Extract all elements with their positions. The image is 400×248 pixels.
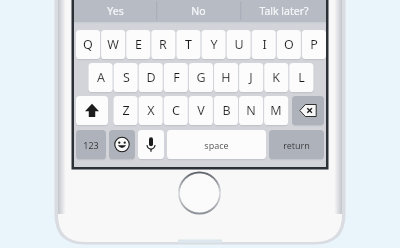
button[interactable]: S (114, 63, 138, 92)
staticText: F (173, 69, 180, 86)
button[interactable]: Shift (76, 96, 108, 125)
staticText: U (234, 36, 244, 53)
button[interactable]: A (89, 63, 113, 92)
staticText: V (197, 102, 205, 119)
button[interactable]: N (239, 96, 263, 125)
staticText: return (283, 139, 310, 151)
button[interactable]: R (151, 30, 175, 59)
staticText: E (135, 36, 142, 53)
button[interactable]: Y (202, 30, 226, 59)
button[interactable]: J (239, 63, 263, 92)
staticText: space (204, 139, 229, 151)
button[interactable]: Home (178, 172, 221, 214)
button[interactable]: B (214, 96, 238, 125)
button[interactable]: P (302, 30, 326, 59)
staticText: S (123, 69, 130, 86)
button[interactable]: Emoji (109, 130, 135, 159)
button[interactable]: U (227, 30, 251, 59)
button[interactable]: Q (76, 30, 100, 59)
staticText: D (146, 69, 156, 86)
staticText: No (191, 4, 206, 18)
button[interactable]: E (126, 30, 150, 59)
button[interactable]: X (139, 96, 163, 125)
staticText: K (272, 69, 280, 86)
button[interactable]: Z (114, 96, 138, 125)
staticText: R (159, 36, 167, 53)
staticText: O (284, 36, 294, 53)
staticText: B (222, 102, 231, 119)
staticText: T (185, 36, 192, 53)
staticText: X (147, 102, 155, 119)
staticText: A (97, 69, 105, 86)
button[interactable]: W (101, 30, 125, 59)
staticText: Y (210, 36, 218, 53)
button[interactable]: M (264, 96, 288, 125)
button[interactable]: F (164, 63, 188, 92)
button[interactable]: G (189, 63, 213, 92)
button[interactable]: Dictate (138, 130, 164, 159)
button[interactable]: K (264, 63, 288, 92)
button[interactable]: D (139, 63, 163, 92)
staticText: Yes (107, 4, 124, 18)
staticText: Q (83, 36, 93, 53)
button[interactable]: Yes (74, 0, 156, 22)
button[interactable]: space (167, 130, 266, 159)
button[interactable]: H (214, 63, 238, 92)
staticText: H (221, 69, 231, 86)
button[interactable]: L (289, 63, 313, 92)
staticText: Z (122, 102, 130, 119)
staticText: Talk later? (259, 4, 309, 18)
button[interactable]: No (157, 0, 240, 22)
staticText: 123 (83, 139, 99, 151)
staticText: M (270, 102, 282, 119)
button[interactable]: O (277, 30, 301, 59)
staticText: I (262, 36, 267, 53)
button[interactable]: Talk later? (241, 0, 326, 22)
staticText: J (249, 69, 253, 86)
staticText: C (172, 102, 180, 119)
staticText: G (196, 69, 206, 86)
button[interactable]: 123 (76, 130, 106, 159)
staticText: N (246, 102, 256, 119)
button[interactable]: V (189, 96, 213, 125)
button[interactable]: I (252, 30, 276, 59)
staticText: P (310, 36, 318, 53)
button[interactable]: Backspace (292, 96, 324, 125)
staticText: W (107, 36, 119, 53)
button[interactable]: T (176, 30, 200, 59)
button[interactable]: C (164, 96, 188, 125)
button[interactable]: return (269, 130, 324, 159)
staticText: L (298, 69, 305, 86)
